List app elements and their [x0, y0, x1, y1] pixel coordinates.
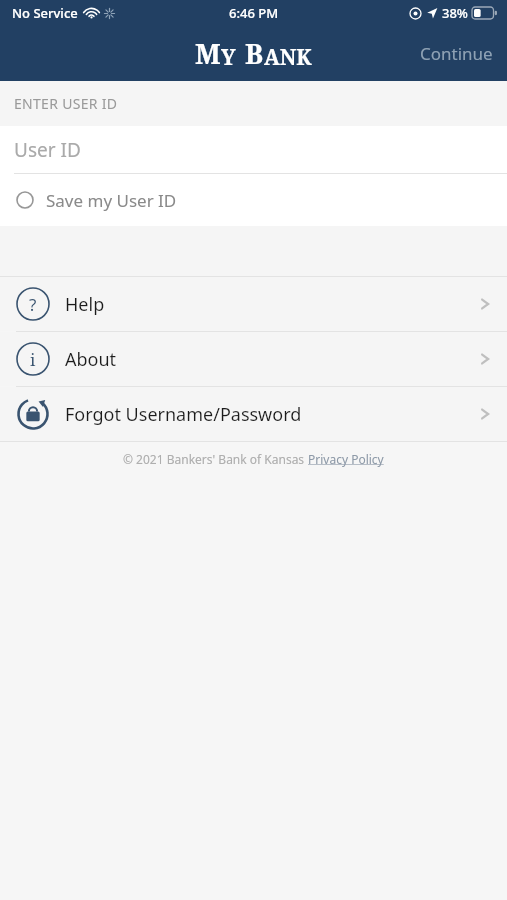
- button[interactable]: Save my User ID: [0, 174, 507, 226]
- staticText: 6:46 PM: [229, 4, 279, 22]
- staticText: Help: [65, 292, 477, 317]
- staticText: Privacy Policy: [308, 451, 384, 467]
- staticText: ?: [29, 293, 37, 316]
- button[interactable]: About: [0, 332, 507, 386]
- staticText: Y: [221, 43, 236, 72]
- staticText: Continue: [420, 42, 493, 65]
- staticText: B: [245, 35, 264, 72]
- staticText: About: [65, 347, 477, 372]
- staticText: User ID: [14, 137, 81, 163]
- button[interactable]: Privacy Policy: [308, 451, 384, 467]
- staticText: ENTER USER ID: [14, 94, 118, 113]
- staticText: i: [30, 348, 36, 371]
- staticText: 38%: [442, 4, 468, 22]
- staticText: M: [195, 35, 221, 72]
- staticText: No Service: [12, 4, 78, 22]
- staticText: Save my User ID: [46, 189, 177, 212]
- staticText: Forgot Username/Password: [65, 402, 477, 427]
- button[interactable]: User ID: [0, 126, 507, 173]
- button[interactable]: Continue: [406, 32, 507, 75]
- staticText: ANK: [264, 43, 312, 72]
- staticText: © 2021 Bankers' Bank of Kansas: [123, 451, 308, 467]
- button[interactable]: Forgot Username or Password: [0, 387, 507, 441]
- button[interactable]: Help: [0, 277, 507, 331]
